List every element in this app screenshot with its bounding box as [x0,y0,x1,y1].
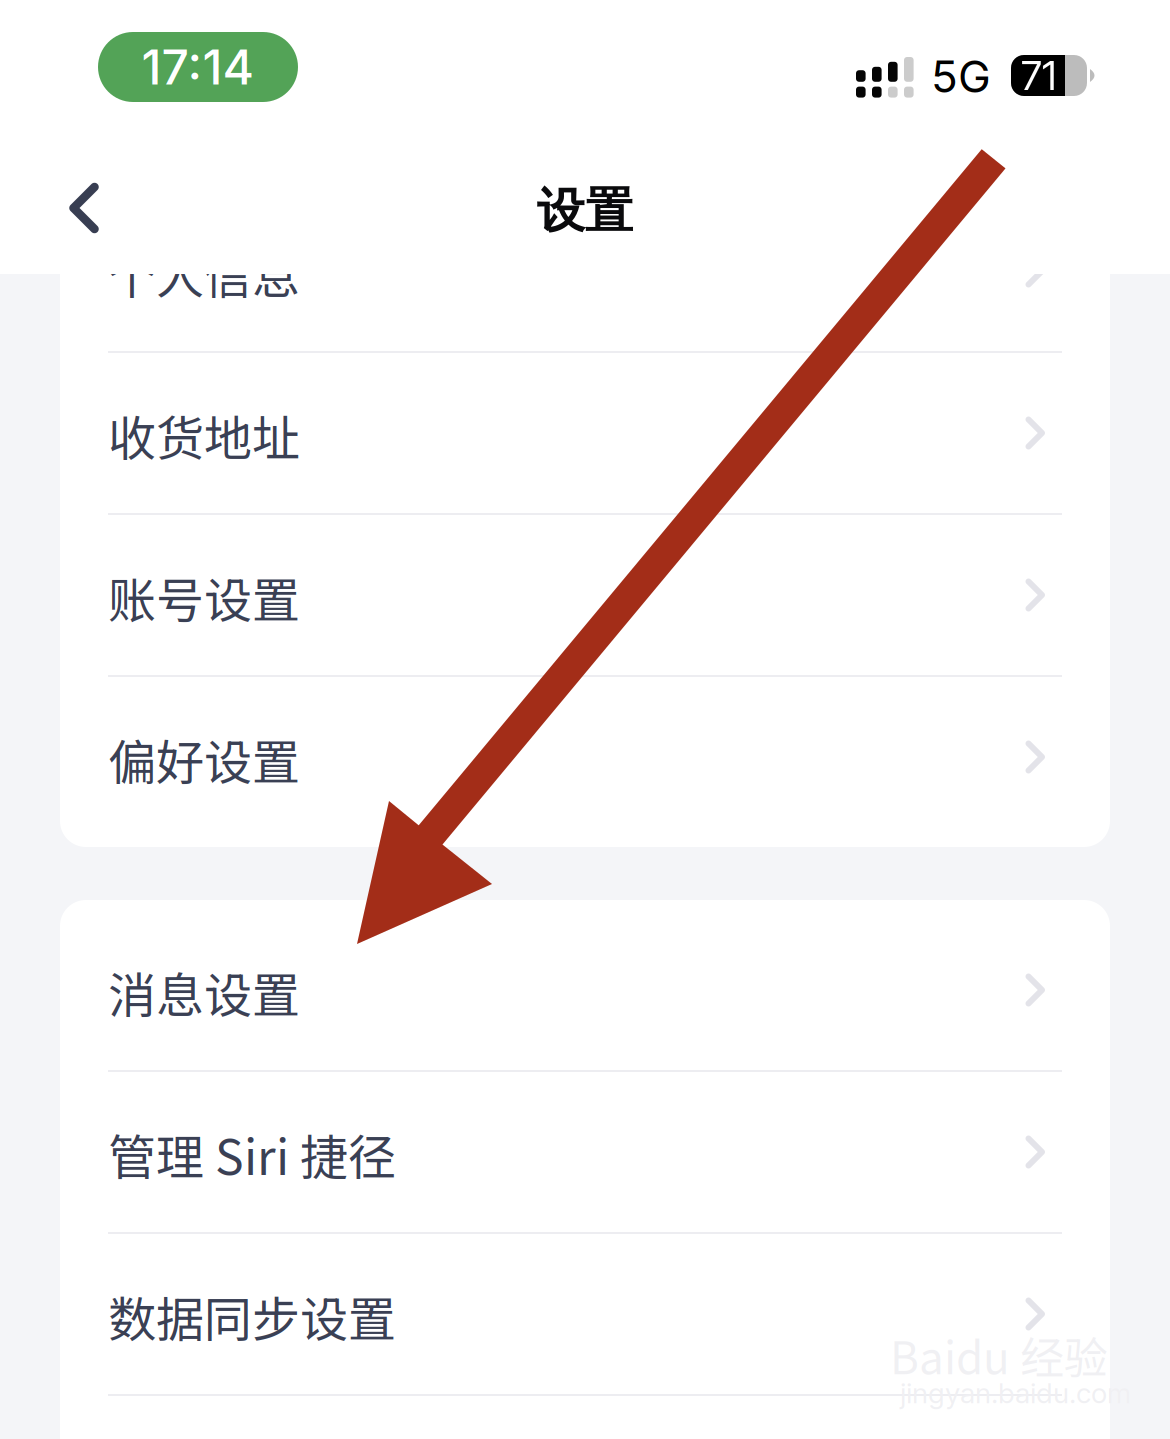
button[interactable]: 消息设置 [60,910,1110,1070]
staticText: 设置 [537,181,633,241]
button[interactable]: 数据同步设置 [60,1234,1110,1394]
button[interactable]: Back [36,160,132,256]
button[interactable]: 管理 Siri 捷径 [60,1072,1110,1232]
staticText: 偏好设置 [108,724,300,794]
staticText: 收货地址 [108,400,300,470]
staticText: Baidu 经验 [890,1323,1108,1387]
staticText: 17:14 [141,38,254,96]
staticText: 管理 Siri 捷径 [108,1119,396,1189]
button[interactable]: 收货地址 [60,353,1110,513]
staticText: jingyan.baidu.com [900,1376,1131,1410]
button[interactable]: 账号设置 [60,515,1110,675]
staticText: 个人信息 [108,238,300,308]
staticText: 账号设置 [108,562,300,632]
button[interactable]: 偏好设置 [60,677,1110,837]
staticText: 消息设置 [108,957,300,1027]
staticText: 数据同步设置 [108,1281,396,1351]
staticText: 5G [931,50,991,103]
staticText: 71 [1021,51,1057,100]
button[interactable]: 个人信息 [60,191,1110,351]
